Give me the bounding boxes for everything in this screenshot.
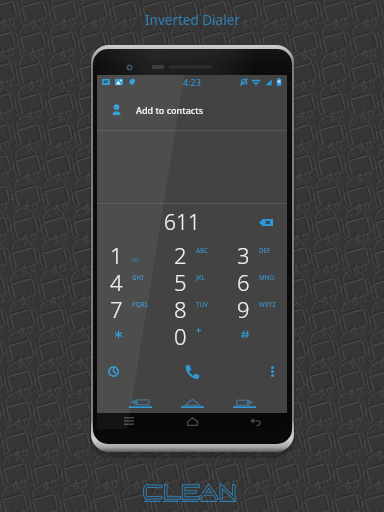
staticText: 1 [110,240,123,267]
button[interactable]: 9 [224,294,287,321]
staticText: 6 [237,267,250,294]
staticText: PQRS [132,300,148,308]
button[interactable]: 4 [97,267,161,294]
button[interactable]: More options [260,359,284,384]
staticText: 611 [164,208,200,237]
button[interactable]: Backspace [254,211,278,233]
staticText: WXYZ [259,300,276,308]
button[interactable]: Home [161,413,224,429]
button[interactable]: Recents [166,394,218,413]
button[interactable]: Add to contacts [97,89,287,130]
button[interactable]: Call history [101,359,125,384]
staticText: 4 [110,267,123,294]
button[interactable]: Call [180,359,204,384]
staticText: 0 [174,321,187,348]
button[interactable]: Menu [97,413,161,429]
button[interactable]: 0 [161,321,224,348]
staticText: 8 [174,294,187,321]
button[interactable]: 8 [161,294,224,321]
staticText: MNO [259,273,275,281]
staticText: TUV [196,300,208,308]
staticText: 9 [237,294,250,321]
button[interactable]: CLEAN [144,486,238,502]
button[interactable]: 6 [224,267,287,294]
staticText: 3 [237,240,250,267]
button[interactable]: 2 [161,240,224,267]
staticText: GHI [132,273,144,281]
button[interactable]: Back [224,413,287,429]
staticText: JKL [196,273,206,281]
staticText: ABC [196,246,209,254]
staticText: Add to contacts [136,104,204,116]
button[interactable]: 1 [97,240,161,267]
button[interactable] [224,321,287,348]
button[interactable]: 3 [224,240,287,267]
staticText: 4:23 [183,76,201,88]
staticText: 5 [174,267,187,294]
button[interactable] [97,321,161,348]
button[interactable]: 5 [161,267,224,294]
staticText: 7 [110,294,123,321]
button[interactable]: Contacts [218,394,270,413]
button[interactable]: Speed dial [114,394,166,413]
staticText: Inverted Dialer [145,11,240,29]
staticText: 2 [174,240,187,267]
button[interactable]: 7 [97,294,161,321]
staticText: DEF [259,246,271,254]
